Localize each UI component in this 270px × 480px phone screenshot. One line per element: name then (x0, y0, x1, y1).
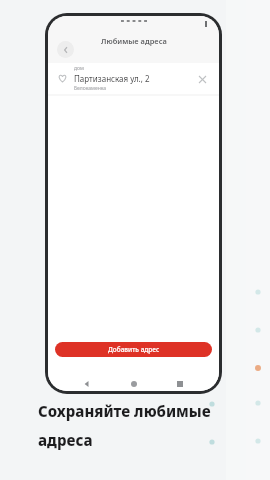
staticText: адреса (38, 430, 93, 450)
staticText: Белокаменка (74, 85, 107, 92)
button[interactable]: Recent apps (173, 377, 187, 391)
button[interactable]: Remove address (194, 71, 210, 87)
staticText: Добавить адрес (108, 345, 160, 354)
button[interactable]: Back (57, 41, 74, 58)
staticText: Любимые адреса (101, 36, 167, 46)
staticText: Партизанская ул., 2 (74, 73, 150, 84)
staticText: Сохраняйте любимые (38, 401, 211, 421)
button[interactable]: дом (48, 63, 219, 94)
staticText: дом (74, 65, 84, 72)
button[interactable]: Добавить адрес (55, 342, 212, 357)
button[interactable]: Home (127, 377, 141, 391)
button[interactable]: Back (80, 377, 94, 391)
